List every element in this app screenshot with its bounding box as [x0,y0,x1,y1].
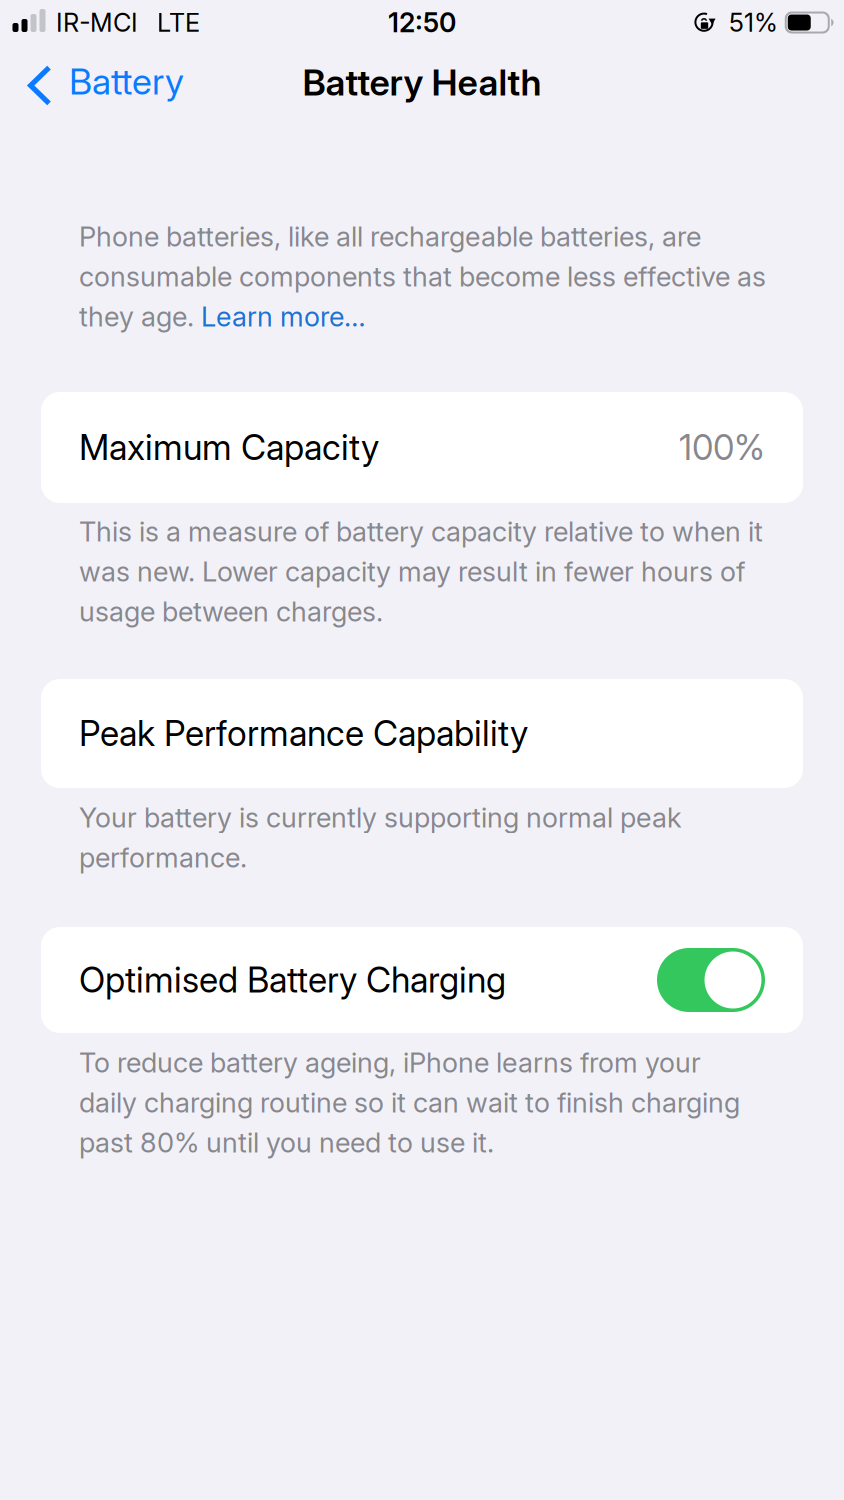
staticText: 12:50 [388,6,456,39]
button[interactable]: Optimised Battery Charging [41,927,803,1033]
staticText: Your battery is currently supporting nor… [79,801,682,874]
staticText: LTE [157,7,200,38]
staticText: Battery [69,60,184,103]
staticText: To reduce battery ageing, iPhone learns … [79,1046,740,1159]
staticText: they age. [79,300,194,333]
staticText: Maximum Capacity [79,426,379,468]
button[interactable]: Optimised Battery Charging, on [657,948,765,1012]
staticText: This is a measure of battery capacity re… [79,515,763,628]
staticText: Learn more… [201,300,366,333]
staticText: 51% [729,7,778,38]
button[interactable]: Peak Performance Capability [41,679,803,788]
button[interactable]: Maximum Capacity [41,392,803,503]
staticText: Peak Performance Capability [79,712,528,754]
staticText: Phone batteries, like all rechargeable b… [79,220,766,293]
staticText: Optimised Battery Charging [79,959,506,1001]
staticText: 100% [679,426,765,468]
staticText: Battery Health [302,61,541,104]
staticText: IR-MCI [56,7,138,38]
button[interactable]: Learn more… [194,300,366,333]
button[interactable]: Battery [0,49,200,114]
